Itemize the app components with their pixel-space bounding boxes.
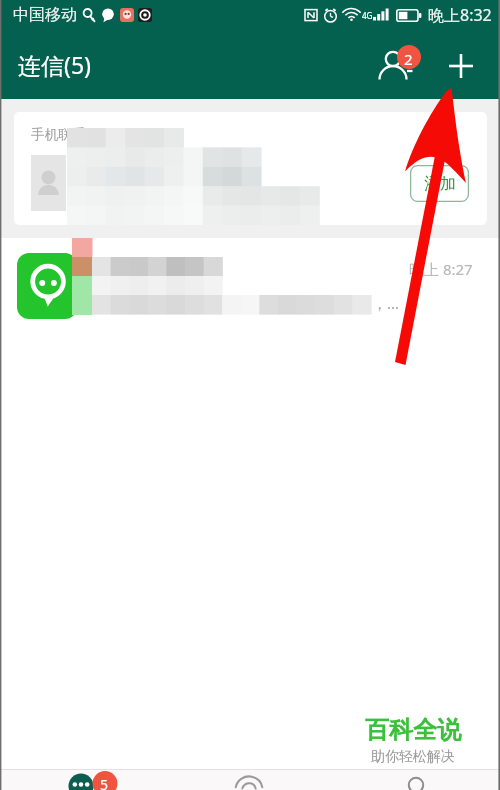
button[interactable]: Discover: [333, 770, 500, 790]
button[interactable]: 手机联系人: [14, 112, 487, 225]
button[interactable]: Messages: [0, 770, 166, 790]
staticText: 4G: [362, 10, 373, 21]
staticText: 连信(5): [18, 49, 91, 80]
staticText: 手机联系人: [31, 126, 99, 143]
staticText: 助你轻松解决: [371, 748, 455, 766]
staticText: 2: [404, 49, 413, 69]
button[interactable]: New friends: [370, 38, 424, 92]
staticText: 中国移动: [13, 5, 77, 25]
staticText: 添加: [424, 174, 456, 194]
staticText: 5: [100, 775, 109, 790]
button[interactable]: Nearby: [166, 770, 333, 790]
staticText: 晚上8:32: [428, 4, 492, 26]
button[interactable]: 添加: [410, 165, 469, 202]
button[interactable]: 晚上 8:27: [0, 238, 500, 330]
staticText: 百科全说: [365, 715, 461, 745]
button[interactable]: Add: [437, 42, 485, 90]
staticText: 晚上 8:27: [409, 259, 473, 279]
staticText: 书，...: [357, 293, 400, 313]
